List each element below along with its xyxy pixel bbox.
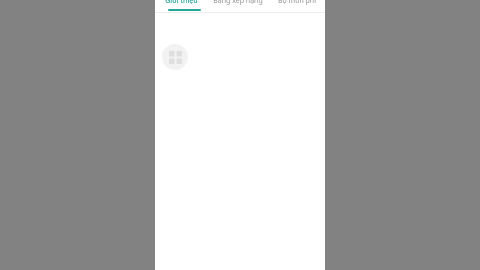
button[interactable]: Bộ môn phí [269,0,325,7]
staticText: Bộ môn phí [278,0,316,6]
button[interactable]: Ứng dụng [162,44,188,70]
button[interactable]: Giới thiệu [155,0,207,7]
staticText: Giới thiệu [165,0,198,6]
button[interactable]: Bảng xếp hạng [207,0,269,7]
staticText: Bảng xếp hạng [213,0,263,6]
